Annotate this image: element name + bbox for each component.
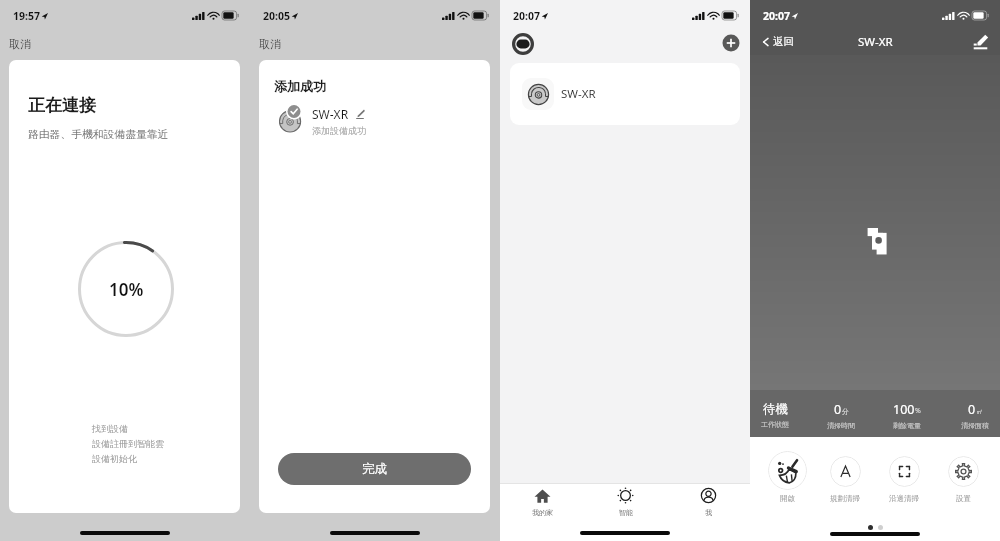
- staticText: SW-XR: [312, 106, 349, 122]
- button[interactable]: 我: [667, 487, 750, 524]
- button[interactable]: Add device: [722, 34, 740, 52]
- button[interactable]: 智能: [584, 487, 667, 524]
- staticText: 完成: [362, 461, 387, 477]
- staticText: 10%: [109, 278, 144, 301]
- staticText: 智能: [619, 508, 633, 517]
- staticText: 20:07: [763, 9, 790, 23]
- staticText: 20:05: [263, 9, 290, 23]
- staticText: 添加設備成功: [312, 125, 366, 136]
- button[interactable]: 取消: [259, 37, 281, 51]
- staticText: 0: [834, 401, 842, 418]
- button[interactable]: 設置: [938, 451, 988, 501]
- staticText: 路由器、手機和設備盡量靠近: [28, 128, 169, 142]
- button[interactable]: 完成: [278, 453, 471, 485]
- staticText: 找到設備: [92, 423, 128, 434]
- button[interactable]: SW-XR: [510, 63, 740, 125]
- staticText: 取消: [259, 37, 281, 51]
- staticText: ㎡: [976, 407, 983, 416]
- button[interactable]: 返回: [761, 35, 794, 48]
- staticText: 19:57: [13, 9, 40, 23]
- staticText: 清掃時間: [827, 421, 855, 430]
- button[interactable]: 開啟: [762, 451, 812, 501]
- staticText: 設備註冊到智能雲: [92, 438, 164, 449]
- staticText: 我的家: [532, 508, 553, 517]
- staticText: 清掃面積: [961, 421, 989, 430]
- staticText: 添加成功: [274, 78, 326, 94]
- staticText: 沿邊清掃: [889, 494, 919, 503]
- staticText: SW-XR: [561, 86, 596, 102]
- staticText: 返回: [773, 35, 794, 48]
- button[interactable]: 規劃清掃: [820, 451, 870, 501]
- staticText: 設備初始化: [92, 453, 137, 464]
- staticText: 開啟: [780, 494, 795, 503]
- button[interactable]: SW-XR: [279, 103, 366, 133]
- staticText: 剩餘電量: [893, 421, 921, 430]
- staticText: 設置: [956, 494, 971, 503]
- staticText: 正在連接: [28, 95, 96, 116]
- staticText: 0: [968, 401, 976, 418]
- staticText: 100: [893, 401, 915, 418]
- staticText: 分: [842, 407, 849, 416]
- button[interactable]: 取消: [9, 37, 31, 51]
- staticText: 取消: [9, 37, 31, 51]
- staticText: 工作狀態: [761, 420, 789, 429]
- staticText: %: [915, 406, 921, 416]
- button[interactable]: Home selector: [512, 33, 534, 55]
- other: Rename: [355, 109, 365, 119]
- button[interactable]: Edit: [972, 33, 989, 50]
- button[interactable]: 沿邊清掃: [879, 451, 929, 501]
- staticText: 規劃清掃: [830, 494, 860, 503]
- staticText: SW-XR: [858, 34, 893, 50]
- staticText: 待機: [763, 401, 788, 417]
- staticText: 我: [705, 508, 712, 517]
- button[interactable]: 我的家: [500, 487, 584, 524]
- staticText: 20:07: [513, 9, 540, 23]
